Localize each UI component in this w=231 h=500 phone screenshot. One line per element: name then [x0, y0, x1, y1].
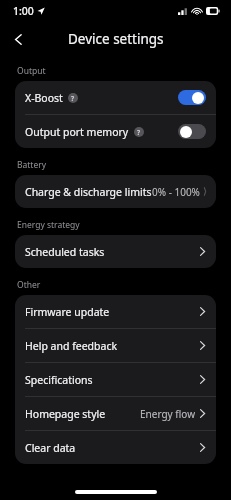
button[interactable]: Back	[3, 24, 33, 54]
staticText: Charge & discharge limits	[25, 185, 152, 199]
staticText: Energy flow	[140, 407, 195, 421]
button[interactable]: Homepage style	[15, 397, 216, 430]
button[interactable]: On	[178, 90, 206, 105]
button[interactable]: Scheduled tasks	[15, 235, 216, 268]
staticText: Other	[17, 279, 41, 291]
staticText: ?	[137, 128, 141, 137]
staticText: Scheduled tasks	[25, 245, 105, 259]
staticText: Output	[17, 65, 46, 77]
staticText: 1:00	[13, 4, 34, 18]
staticText: 0% - 100%	[152, 185, 200, 199]
staticText: Battery	[17, 159, 47, 171]
staticText: X-Boost	[25, 91, 63, 105]
staticText: ?	[71, 94, 75, 103]
button[interactable]: Help and feedback	[15, 329, 216, 362]
staticText: Energy strategy	[17, 219, 80, 231]
button[interactable]: Clear data	[15, 431, 216, 464]
staticText: Specifications	[25, 373, 93, 387]
button[interactable]: Output port memory	[15, 115, 216, 148]
staticText: Homepage style	[25, 407, 106, 421]
button[interactable]: Help	[68, 93, 78, 103]
button[interactable]: Specifications	[15, 363, 216, 396]
staticText: Help and feedback	[25, 339, 118, 353]
button[interactable]: Charge & discharge limits	[15, 175, 216, 208]
button[interactable]: Firmware update	[15, 295, 216, 328]
staticText: Clear data	[25, 441, 76, 455]
staticText: Output port memory	[25, 125, 129, 139]
button[interactable]: Off	[178, 124, 206, 139]
button[interactable]: X-Boost	[15, 81, 216, 114]
button[interactable]: Help	[134, 127, 144, 137]
staticText: Firmware update	[25, 305, 110, 319]
staticText: Device settings	[68, 30, 164, 48]
